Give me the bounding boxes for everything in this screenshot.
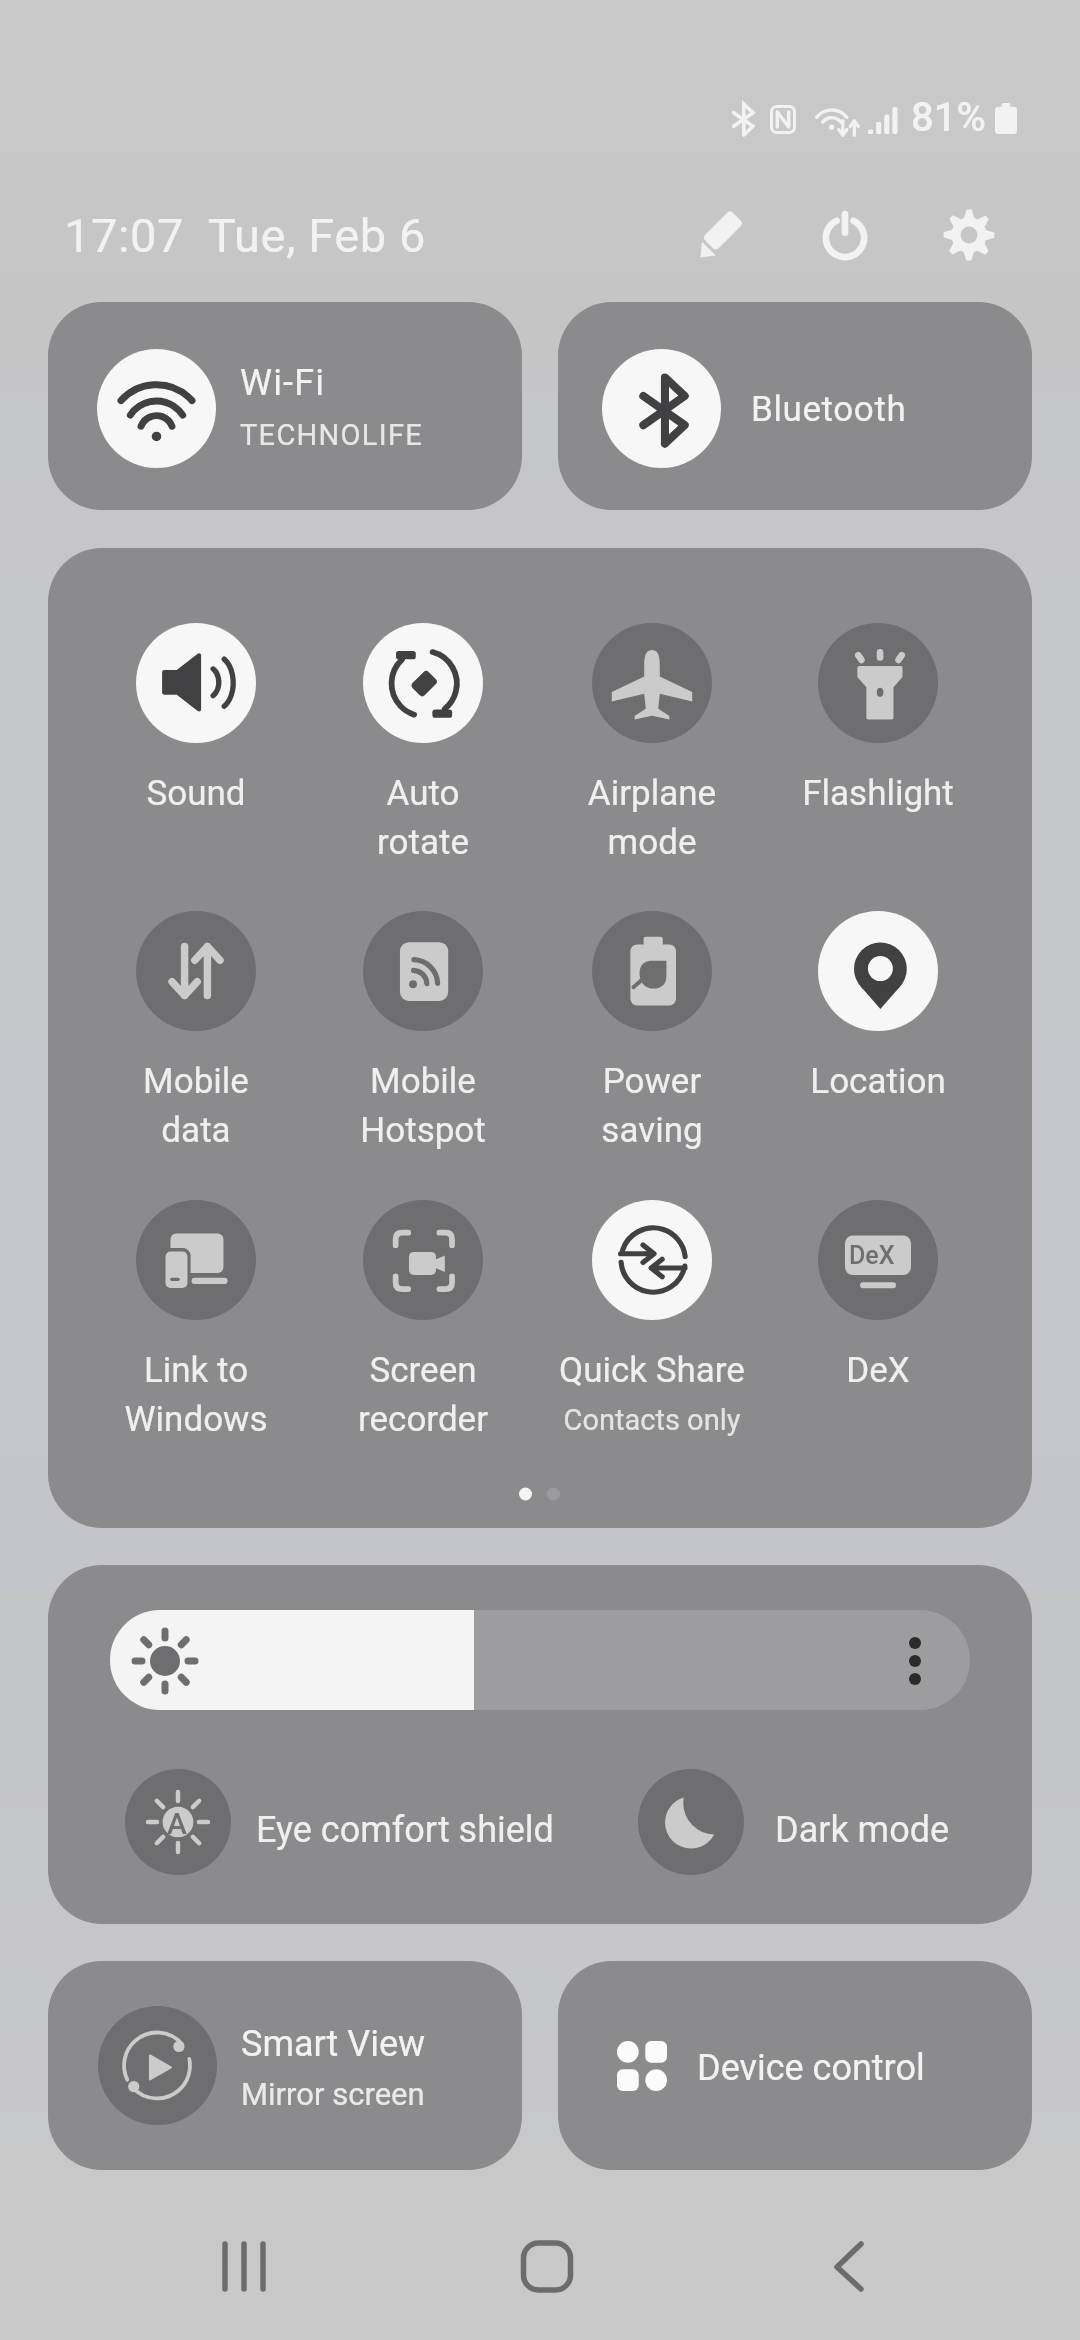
button[interactable]: Wi-Fi bbox=[48, 302, 522, 510]
button[interactable]: Auto rotate bbox=[309, 623, 537, 851]
button[interactable]: Device control bbox=[558, 1961, 1032, 2170]
staticText: Mobile Hotspot bbox=[309, 1061, 537, 1151]
staticText: Wi-Fi bbox=[240, 362, 326, 404]
button[interactable]: Link to Windows bbox=[82, 1200, 310, 1428]
staticText: Power saving bbox=[538, 1061, 766, 1151]
button[interactable]: Mobile data bbox=[82, 911, 310, 1139]
button[interactable]: Flashlight bbox=[764, 623, 992, 851]
staticText: Auto rotate bbox=[309, 773, 537, 863]
staticText: Link to Windows bbox=[82, 1350, 310, 1440]
staticText: Mirror screen bbox=[241, 2076, 425, 2112]
staticText: 81% bbox=[911, 94, 986, 141]
button[interactable]: Recent apps bbox=[184, 2226, 304, 2306]
staticText: Sound bbox=[82, 773, 310, 814]
staticText: 17:07 Tue, Feb 6 bbox=[64, 208, 427, 263]
button[interactable]: Brightness bbox=[110, 1610, 970, 1710]
staticText: Device control bbox=[697, 2047, 925, 2089]
button[interactable]: Airplane mode bbox=[538, 623, 766, 851]
staticText: TECHNOLIFE bbox=[240, 418, 424, 452]
button[interactable]: Home bbox=[486, 2226, 606, 2306]
staticText: Smart View bbox=[241, 2023, 426, 2065]
button[interactable]: Edit buttons bbox=[690, 207, 748, 265]
button[interactable]: Back bbox=[777, 2226, 897, 2306]
staticText: DeX bbox=[849, 1241, 895, 1270]
staticText: Contacts only bbox=[538, 1403, 766, 1437]
button[interactable]: Mobile Hotspot bbox=[309, 911, 537, 1139]
staticText: DeX bbox=[764, 1350, 992, 1391]
button[interactable]: DeX bbox=[764, 1200, 992, 1428]
staticText: Bluetooth bbox=[751, 389, 907, 430]
staticText: Quick Share bbox=[538, 1350, 766, 1391]
staticText: Flashlight bbox=[764, 773, 992, 814]
button[interactable]: Bluetooth bbox=[558, 302, 1032, 510]
staticText: Dark mode bbox=[775, 1809, 950, 1851]
button[interactable]: Screen recorder bbox=[309, 1200, 537, 1428]
staticText: Location bbox=[764, 1061, 992, 1102]
button[interactable]: Smart View bbox=[48, 1961, 522, 2170]
staticText: Airplane mode bbox=[538, 773, 766, 863]
button[interactable]: A bbox=[125, 1769, 554, 1875]
button[interactable]: Power off bbox=[816, 206, 874, 264]
button[interactable]: Sound bbox=[82, 623, 310, 851]
button[interactable]: Settings bbox=[940, 206, 998, 264]
staticText: Screen recorder bbox=[309, 1350, 537, 1440]
staticText: Mobile data bbox=[82, 1061, 310, 1151]
staticText: Eye comfort shield bbox=[256, 1809, 554, 1851]
staticText: A bbox=[167, 1806, 187, 1841]
button[interactable]: Location bbox=[764, 911, 992, 1139]
button[interactable]: Quick Share bbox=[538, 1200, 766, 1428]
button[interactable]: Dark mode bbox=[638, 1769, 950, 1875]
button[interactable]: Power saving bbox=[538, 911, 766, 1139]
